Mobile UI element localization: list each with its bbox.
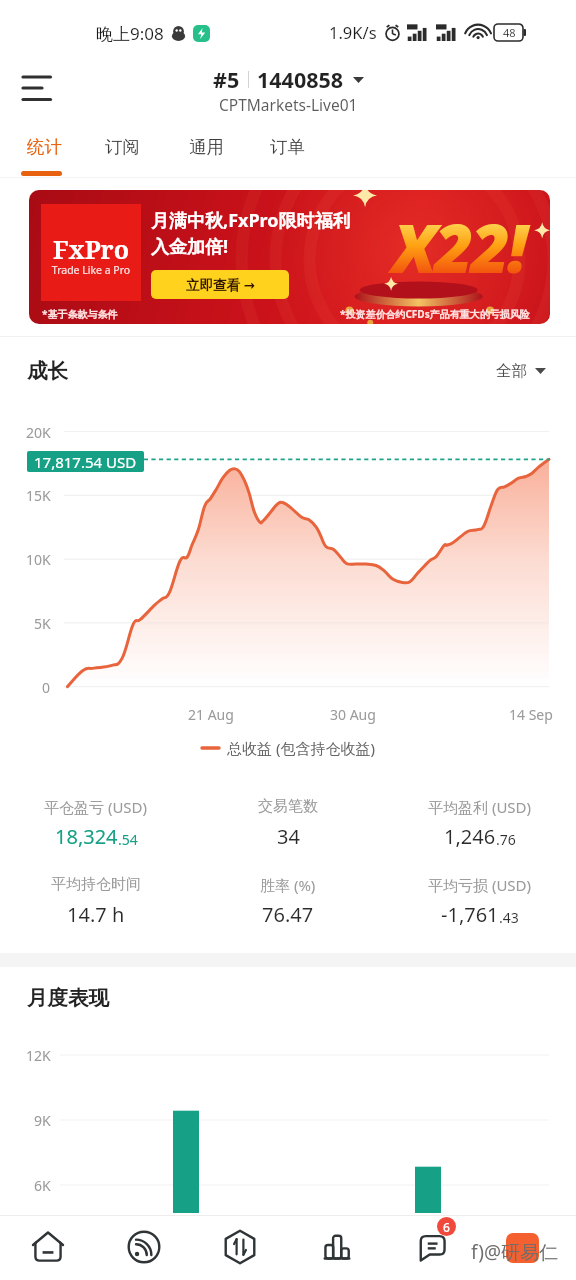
staticText: 30 Aug	[330, 705, 376, 724]
staticText: 9K	[34, 1111, 51, 1130]
button[interactable]: 平均盈利 (USD)	[384, 797, 576, 863]
staticText: *投资差价合约CFDs产品有重大的亏损风险	[340, 307, 530, 321]
staticText: 21 Aug	[188, 705, 234, 724]
staticText: Trade Like a Pro	[41, 263, 141, 277]
staticText: 月满中秋,FxPro限时福利	[151, 208, 351, 233]
button[interactable]: 胜率 (%)	[192, 875, 384, 941]
staticText: 1,246	[444, 823, 496, 850]
staticText: 立即查看 →	[186, 276, 255, 294]
staticText: 76.47	[262, 901, 314, 928]
staticText: 1.9K/s	[329, 21, 377, 43]
staticText: 平均盈利 (USD)	[428, 797, 532, 817]
staticText: 通用	[189, 136, 224, 158]
staticText: 全部	[496, 361, 527, 381]
button[interactable]: 订单	[257, 126, 317, 176]
staticText: 6	[443, 1219, 450, 1235]
staticText: 晚上9:08	[96, 22, 164, 45]
staticText: 17,817.54 USD	[34, 452, 137, 472]
staticText: 入金加倍!	[151, 234, 229, 259]
staticText: 10K	[26, 550, 51, 569]
staticText: 订单	[270, 136, 305, 158]
staticText: 月度表现	[27, 985, 109, 1011]
button[interactable]: 全部	[496, 361, 546, 381]
staticText: 总收益 (包含持仓收益)	[227, 738, 375, 758]
staticText: .54	[118, 830, 138, 849]
button[interactable]: Statistics	[299, 1215, 375, 1279]
staticText: 交易笔数	[258, 797, 318, 816]
staticText: 1440858	[257, 65, 344, 94]
staticText: *基于条款与条件	[42, 307, 118, 321]
staticText: 平均持仓时间	[51, 875, 141, 894]
staticText: 订阅	[105, 136, 140, 158]
button[interactable]: 通用	[176, 126, 236, 176]
staticText: FxPro	[41, 232, 141, 266]
button[interactable]: Messages	[395, 1215, 471, 1279]
staticText: 14.7 h	[67, 901, 125, 928]
button[interactable]: 订阅	[92, 126, 152, 176]
staticText: 20K	[26, 423, 51, 442]
staticText: 48	[503, 25, 516, 40]
staticText: 34	[277, 823, 300, 850]
button[interactable]: 立即查看 →	[151, 270, 289, 299]
button[interactable]: 平仓盈亏 (USD)	[0, 797, 192, 863]
staticText: X22!	[392, 200, 525, 293]
staticText: 5K	[34, 614, 51, 633]
staticText: 统计	[27, 136, 62, 158]
staticText: #5	[213, 65, 240, 94]
button[interactable]: 统计	[14, 126, 74, 176]
button[interactable]: Signals	[106, 1215, 182, 1279]
button[interactable]: 平均持仓时间	[0, 875, 192, 941]
staticText: 12K	[26, 1046, 51, 1065]
button[interactable]: Menu	[12, 66, 60, 114]
button[interactable]: Home	[10, 1215, 86, 1279]
staticText: -1,761	[441, 901, 499, 928]
staticText: 平仓盈亏 (USD)	[44, 797, 148, 817]
staticText: CPTMarkets-Live01	[219, 94, 358, 115]
staticText: f)@研易仁	[471, 1239, 559, 1265]
button[interactable]: 交易笔数	[192, 797, 384, 863]
staticText: 18,324	[55, 823, 118, 850]
staticText: 胜率 (%)	[260, 875, 316, 895]
staticText: 成长	[27, 358, 68, 384]
staticText: 0	[42, 678, 51, 697]
button[interactable]: FxPro	[29, 190, 550, 324]
staticText: 15K	[26, 486, 51, 505]
staticText: 14 Sep	[509, 705, 553, 724]
staticText: .76	[496, 830, 516, 849]
button[interactable]: 平均亏损 (USD)	[384, 875, 576, 941]
button[interactable]: Trade	[202, 1215, 278, 1279]
staticText: .43	[499, 908, 519, 927]
staticText: 6K	[34, 1176, 51, 1195]
staticText: 平均亏损 (USD)	[428, 875, 532, 895]
